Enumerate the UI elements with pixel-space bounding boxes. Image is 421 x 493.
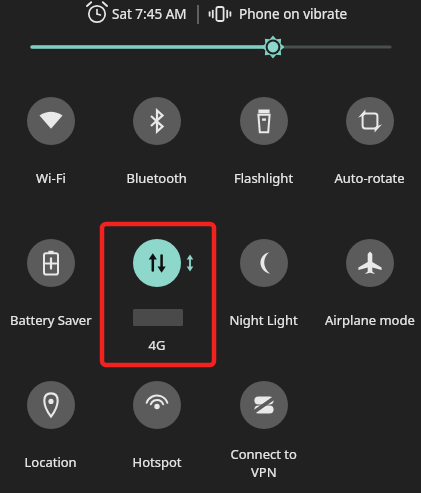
button[interactable]: Hotspot [107,374,207,479]
button[interactable]: Battery Saver [1,232,101,332]
button[interactable]: Mobile data 4G [102,226,214,362]
button[interactable]: Location [1,374,101,479]
button[interactable]: Airplane mode [320,232,420,332]
button[interactable]: Bluetooth [107,90,207,190]
button[interactable]: Wi-Fi [1,90,101,190]
button[interactable]: Brightness slider [22,33,399,61]
button[interactable]: Phone on vibrate [205,2,353,26]
button[interactable]: Connect to VPN [214,374,314,479]
button[interactable]: Night Light [214,232,314,332]
button[interactable]: Auto-rotate [320,90,420,190]
button[interactable]: Flashlight [214,90,314,190]
button[interactable]: Alarm Sat 7:45 AM [88,2,200,26]
